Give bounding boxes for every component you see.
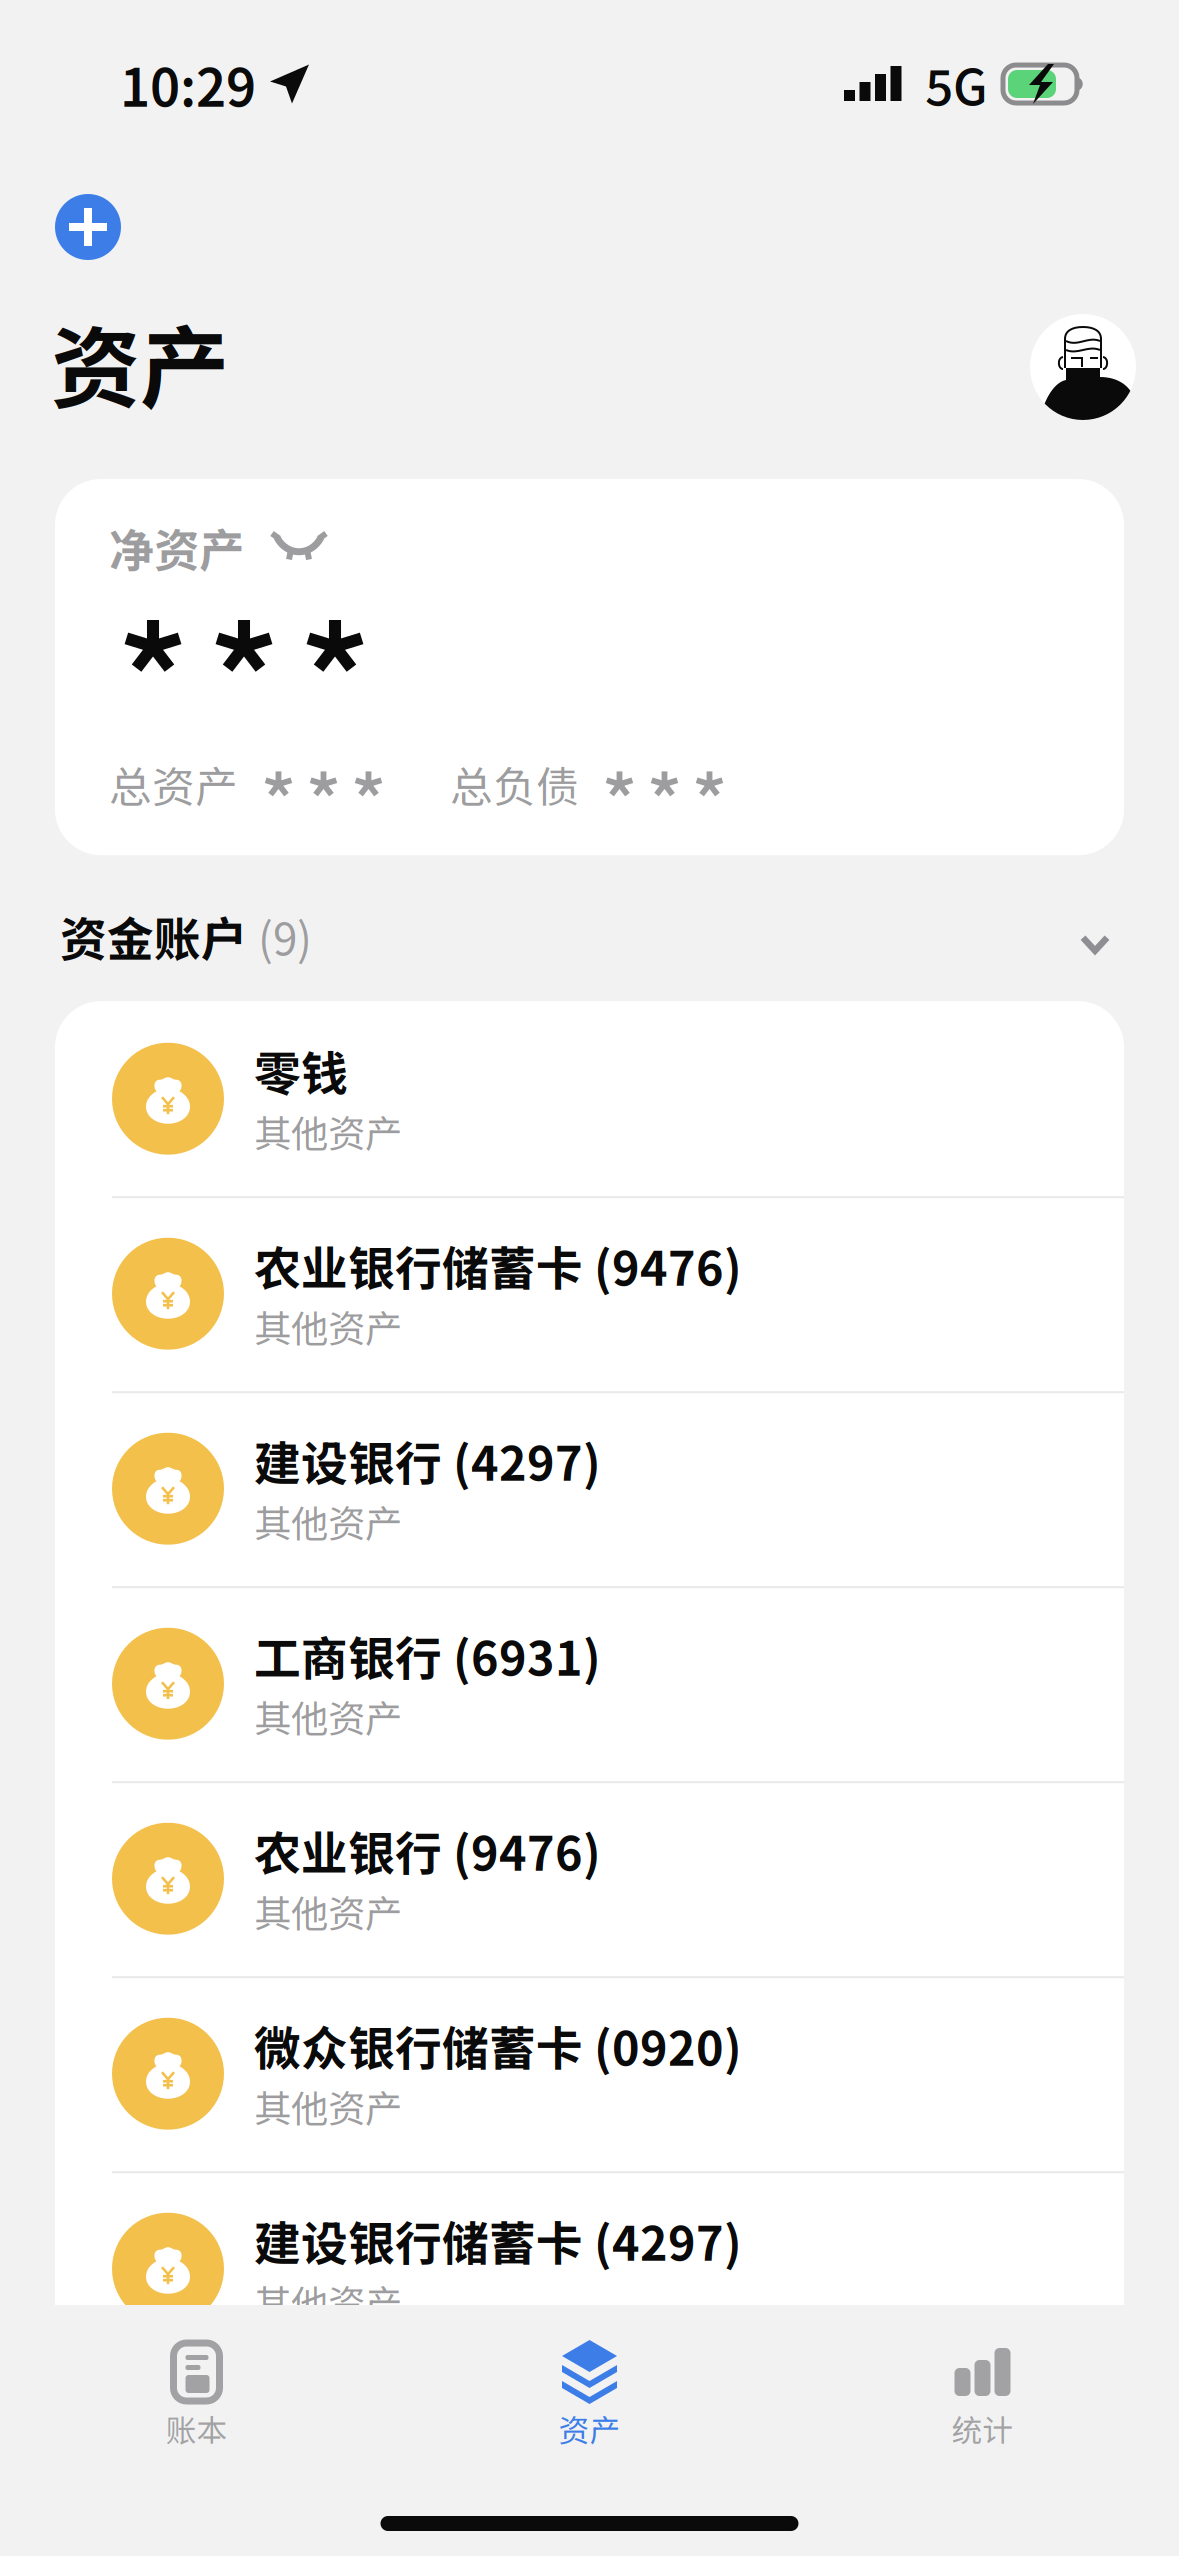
staticText: 微众银行储蓄卡 (0920) bbox=[254, 2012, 742, 2079]
staticText: 其他资产 bbox=[254, 1689, 402, 1743]
staticText: 总资产 bbox=[109, 753, 238, 815]
button[interactable]: 账本 bbox=[0, 2305, 393, 2485]
staticText: 其他资产 bbox=[254, 2274, 402, 2328]
staticText: 农业银行 (9476) bbox=[254, 1817, 601, 1884]
button[interactable]: Add account bbox=[55, 194, 121, 260]
staticText: 其他资产 bbox=[254, 2079, 402, 2133]
button[interactable]: 建设银行 (4297) bbox=[55, 1391, 1124, 1586]
staticText: 建设银行储蓄卡 (4297) bbox=[254, 2207, 742, 2274]
staticText: 资产 bbox=[558, 2406, 620, 2451]
button[interactable]: 农业银行储蓄卡 (9476) bbox=[55, 1196, 1124, 1391]
staticText: 工商银行 (6931) bbox=[254, 1622, 601, 1689]
staticText: 资金账户 bbox=[60, 902, 248, 970]
button[interactable]: 工商银行 (6931) bbox=[55, 1586, 1124, 1781]
button[interactable]: 建设银行储蓄卡 (4297) bbox=[55, 2171, 1124, 2366]
staticText: 农业银行储蓄卡 (9476) bbox=[254, 1232, 742, 1299]
staticText: 建设银行 (4297) bbox=[254, 1427, 601, 1494]
button[interactable]: 统计 bbox=[786, 2305, 1179, 2485]
staticText: 零钱 bbox=[254, 1037, 348, 1104]
button[interactable]: 资产 bbox=[393, 2305, 786, 2485]
staticText: (9) bbox=[248, 904, 312, 968]
staticText: 净资产 bbox=[109, 515, 244, 580]
button[interactable]: 微众银行储蓄卡 (0920) bbox=[55, 1976, 1124, 2171]
button[interactable]: 农业银行 (9476) bbox=[55, 1781, 1124, 1976]
staticText: 统计 bbox=[951, 2406, 1013, 2451]
staticText: 其他资产 bbox=[254, 1884, 402, 1938]
staticText: 账本 bbox=[165, 2406, 227, 2451]
staticText: 其他资产 bbox=[254, 1494, 402, 1548]
button[interactable]: 零钱 bbox=[55, 1001, 1124, 1196]
staticText: 其他资产 bbox=[254, 1299, 402, 1353]
staticText: 5G bbox=[925, 48, 988, 120]
staticText: 其他资产 bbox=[254, 1104, 402, 1158]
staticText: 总负债 bbox=[450, 753, 579, 815]
staticText: 资产 bbox=[51, 297, 229, 427]
staticText: 10:29 bbox=[120, 46, 256, 122]
button[interactable]: 资金账户 bbox=[0, 892, 1179, 980]
button[interactable]: Profile bbox=[1030, 309, 1136, 415]
